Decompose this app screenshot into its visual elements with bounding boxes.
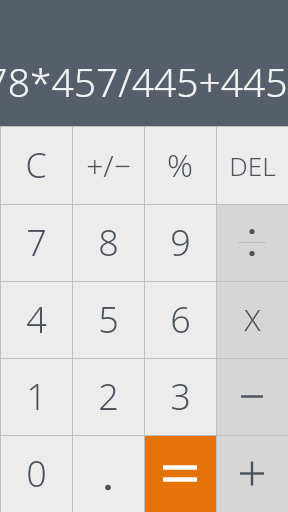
staticText: 0 (26, 449, 47, 498)
staticText: 9 (170, 218, 191, 267)
button[interactable]: 7 (0, 204, 72, 281)
staticText: X (244, 299, 261, 340)
staticText: 7 (26, 218, 47, 267)
button[interactable]: C (0, 126, 72, 204)
button[interactable]: 1 (0, 358, 72, 435)
button[interactable]: Minus (216, 358, 288, 435)
button[interactable]: 0 (0, 435, 72, 512)
button[interactable]: 2 (72, 358, 144, 435)
staticText: 123-78*457/445+445 (0, 55, 288, 108)
staticText: 4 (26, 295, 47, 344)
button[interactable]: DEL (216, 126, 288, 204)
staticText: 1 (26, 372, 47, 421)
staticText: 8 (98, 218, 119, 267)
staticText: 5 (98, 295, 119, 344)
button[interactable]: Plus (216, 435, 288, 512)
staticText: +/− (86, 145, 131, 186)
button[interactable]: 6 (144, 281, 216, 358)
button[interactable]: Divide (216, 204, 288, 281)
staticText: 2 (98, 372, 119, 421)
staticText: C (25, 142, 47, 188)
button[interactable]: +/− (72, 126, 144, 204)
button[interactable]: X (216, 281, 288, 358)
button[interactable]: 9 (144, 204, 216, 281)
staticText: 3 (170, 372, 191, 421)
staticText: DEL (229, 148, 276, 183)
button[interactable]: Decimal point (72, 435, 144, 512)
staticText: 6 (170, 295, 191, 344)
button[interactable]: Equals (144, 435, 216, 512)
button[interactable]: 4 (0, 281, 72, 358)
staticText: % (167, 143, 193, 187)
button[interactable]: % (144, 126, 216, 204)
button[interactable]: 3 (144, 358, 216, 435)
button[interactable]: 8 (72, 204, 144, 281)
button[interactable]: 5 (72, 281, 144, 358)
